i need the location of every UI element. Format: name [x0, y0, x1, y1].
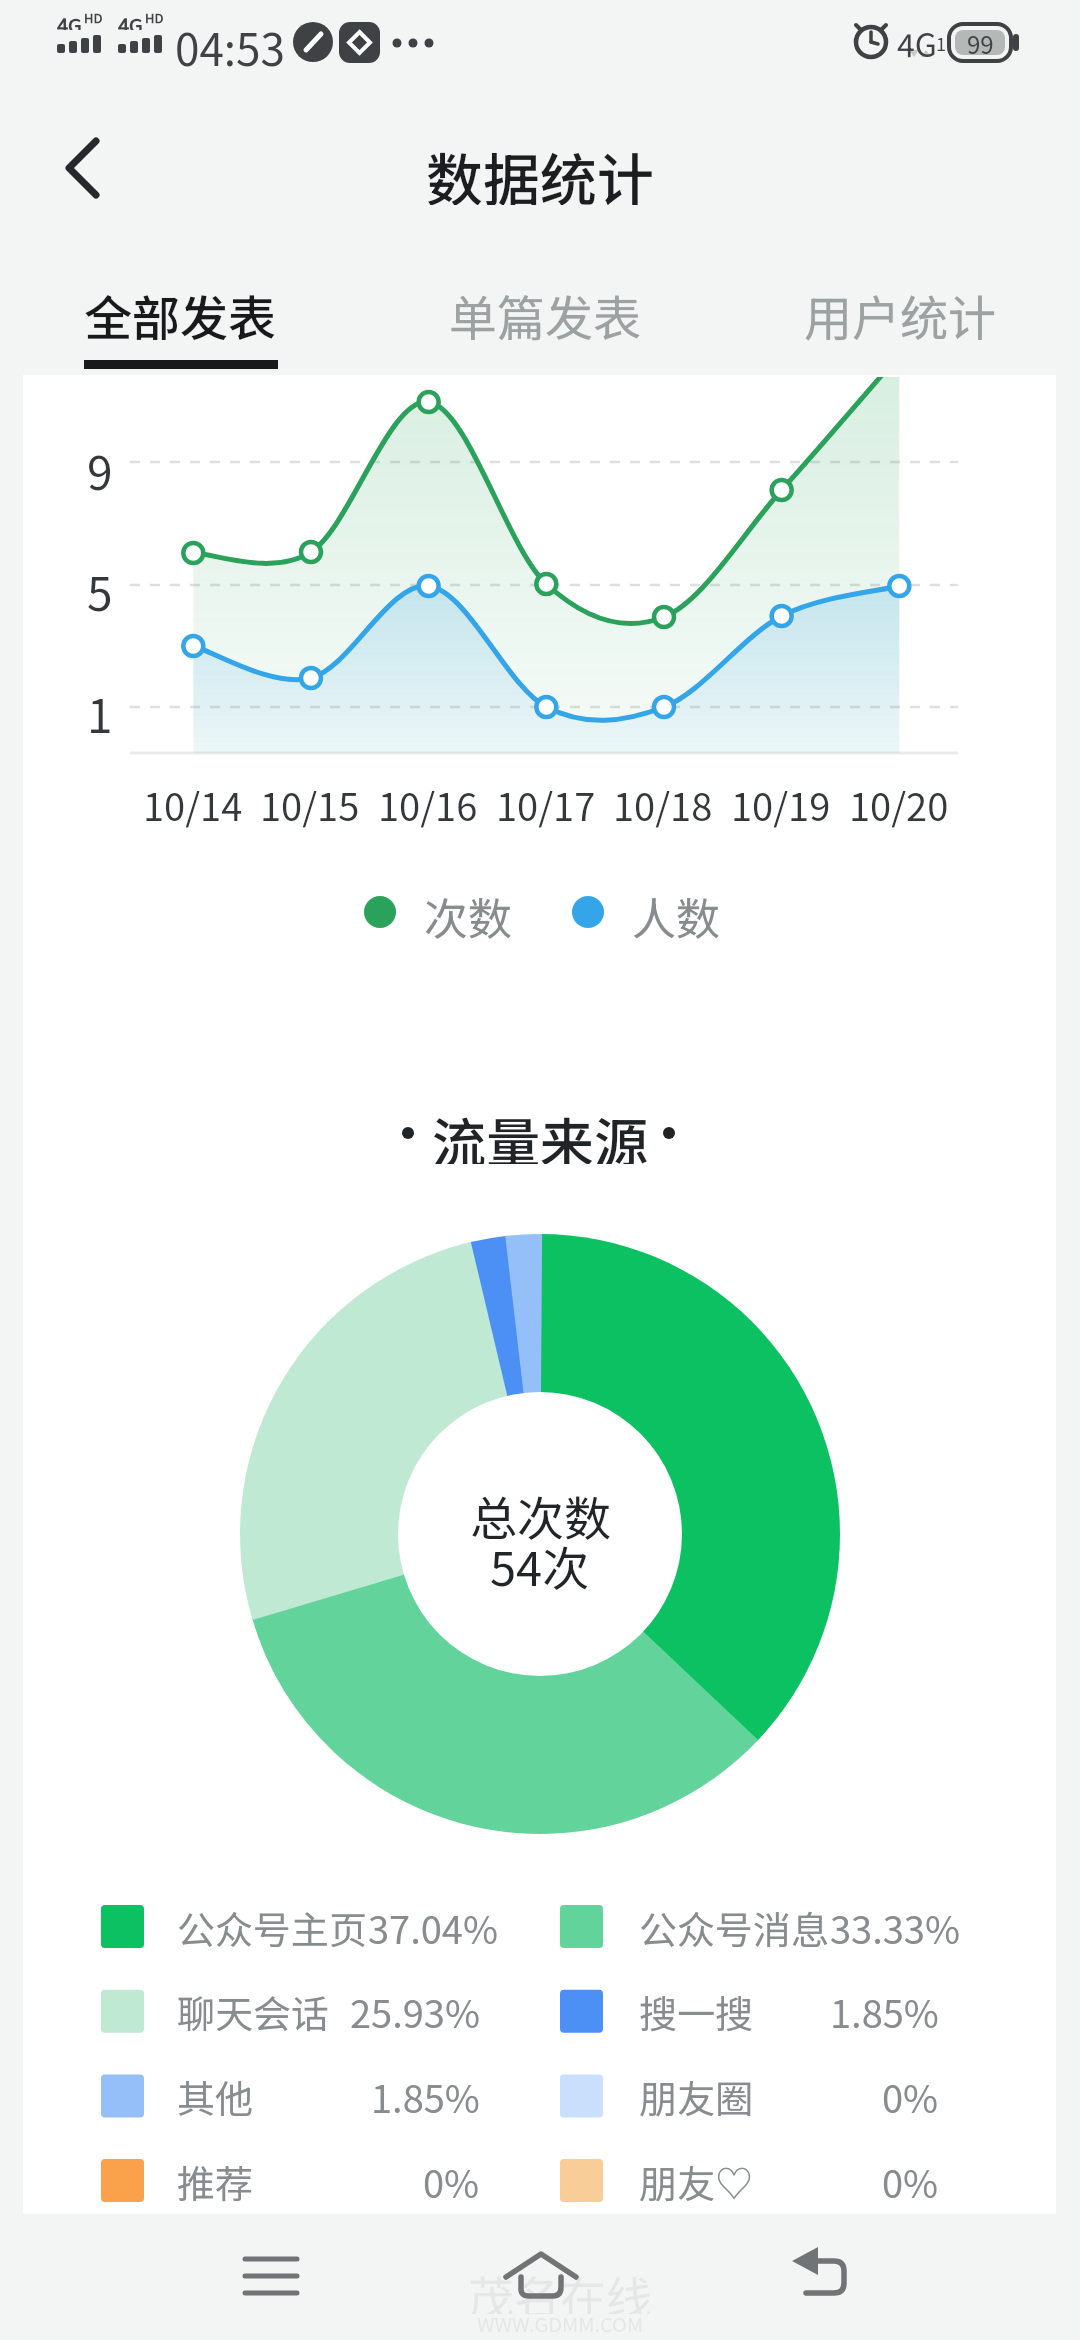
staticText: 4G: [118, 10, 143, 30]
staticText: 全部发表: [84, 280, 277, 350]
button[interactable]: 搜一搜: [639, 1982, 959, 2040]
staticText: 10/15: [260, 777, 360, 831]
button[interactable]: 其他: [177, 2067, 497, 2125]
staticText: 10/14: [143, 777, 243, 831]
staticText: 公众号主页: [177, 1900, 368, 1955]
staticText: 10/17: [496, 777, 596, 831]
staticText: 推荐: [177, 2154, 254, 2209]
button[interactable]: 推荐: [177, 2152, 497, 2210]
staticText: 10/20: [849, 777, 949, 831]
button[interactable]: 单篇发表: [425, 280, 665, 350]
staticText: 数据统计: [426, 135, 654, 205]
staticText: 1.85%: [830, 1984, 939, 2039]
button[interactable]: 朋友♡: [639, 2152, 959, 2210]
button[interactable]: 公众号主页: [177, 1898, 497, 1956]
staticText: 总次数: [470, 1481, 611, 1543]
staticText: 人数: [632, 884, 720, 940]
staticText: 10/18: [613, 777, 713, 831]
staticText: 54次: [490, 1531, 590, 1593]
staticText: HD: [84, 8, 103, 24]
staticText: 聊天会话: [177, 1984, 330, 2039]
staticText: 次数: [424, 884, 512, 940]
staticText: HD: [145, 8, 164, 24]
staticText: 99: [967, 26, 994, 61]
staticText: 0%: [423, 2154, 480, 2209]
button[interactable]: 朋友圈: [639, 2067, 959, 2125]
button[interactable]: 用户统计: [780, 280, 1020, 350]
staticText: WWW.GDMM.COM: [477, 2309, 644, 2338]
staticText: 33.33%: [830, 1900, 960, 1955]
staticText: 04:53: [175, 15, 285, 67]
staticText: 单篇发表: [449, 280, 642, 350]
button[interactable]: [40, 130, 130, 210]
staticText: 37.04%: [368, 1900, 498, 1955]
button[interactable]: 全部发表: [60, 280, 300, 350]
staticText: 5: [87, 558, 113, 614]
staticText: 25.93%: [350, 1984, 480, 2039]
button[interactable]: [181, 2224, 361, 2334]
button[interactable]: 聊天会话: [177, 1982, 497, 2040]
staticText: 9: [87, 437, 113, 493]
staticText: 搜一搜: [639, 1984, 754, 2039]
button[interactable]: [451, 2224, 631, 2334]
staticText: 公众号消息: [639, 1900, 830, 1955]
button[interactable]: 公众号消息: [639, 1898, 959, 1956]
staticText: 其他: [177, 2069, 254, 2124]
staticText: 用户统计: [804, 280, 997, 350]
staticText: 4G: [57, 10, 82, 30]
staticText: 1.85%: [371, 2069, 480, 2124]
staticText: 0%: [882, 2069, 939, 2124]
staticText: 1: [87, 680, 113, 736]
staticText: 10/16: [378, 777, 478, 831]
button[interactable]: [721, 2224, 901, 2334]
staticText: 茂名在线: [468, 2262, 652, 2314]
staticText: 流量来源: [432, 1100, 648, 1164]
staticText: 朋友♡: [639, 2154, 754, 2209]
staticText: 0%: [882, 2154, 939, 2209]
staticText: 朋友圈: [639, 2069, 754, 2124]
staticText: 4G: [897, 20, 937, 60]
staticText: 1: [936, 30, 946, 56]
staticText: 10/19: [731, 777, 831, 831]
